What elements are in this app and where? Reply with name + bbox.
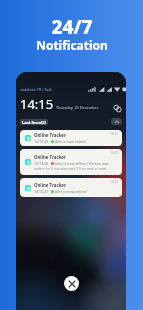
staticText: Alex is now online! [55,139,87,144]
staticText: 14:13:06 [34,161,49,166]
staticText: 24/7 [51,14,93,40]
staticText: 14:13:45 [34,139,49,144]
staticText: 14:13 [110,151,119,155]
button[interactable]: 14:13 [20,149,122,175]
staticText: 14:13 [110,132,119,136]
staticText: 14:13 [110,180,119,184]
staticText: Notification [36,37,108,53]
button[interactable]: 14:13 [20,130,122,146]
staticText: Online Tracker [34,182,66,188]
button[interactable]: Collapse [111,118,122,125]
staticText: John is now offline / Person was [55,161,109,166]
staticText: online for 0 minutes and 19 second in to… [34,166,108,171]
staticText: 14:12:47 [34,189,49,194]
staticText: John is now online! [55,189,87,194]
button[interactable]: Close [64,276,79,291]
staticText: Last Seen(3) [22,120,46,125]
staticText: Online Tracker [34,132,66,138]
button[interactable]: Last Seen(3) [20,119,48,125]
staticText: Online Tracker [34,154,66,160]
staticText: vodafone TR| Task [20,87,52,92]
staticText: Thursday, 23 December [56,105,99,110]
button[interactable]: 14:13 [20,178,122,197]
button[interactable]: Settings [112,103,122,113]
staticText: 14:15 [20,95,54,113]
